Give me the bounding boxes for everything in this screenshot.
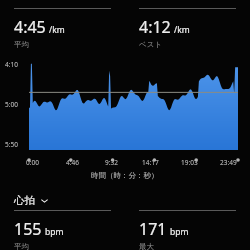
staticText: 5:00 bbox=[5, 100, 18, 109]
staticText: 時間（時：分：秒） bbox=[91, 171, 159, 180]
staticText: 4:46 bbox=[66, 158, 79, 167]
staticText: 171 bbox=[139, 218, 167, 240]
button[interactable]: 心拍 bbox=[0, 194, 250, 207]
staticText: 155 bbox=[14, 218, 42, 240]
staticText: 23:49 bbox=[220, 158, 237, 167]
staticText: 14:17 bbox=[142, 158, 159, 167]
button[interactable]: 171 bbox=[125, 210, 250, 250]
staticText: 最大 bbox=[139, 242, 154, 250]
staticText: 4:45 bbox=[14, 16, 46, 38]
button[interactable]: 155 bbox=[0, 210, 125, 250]
staticText: 5:50 bbox=[5, 140, 18, 149]
button[interactable]: 4:45 bbox=[0, 8, 125, 49]
staticText: 平均 bbox=[14, 242, 29, 250]
staticText: 19:03 bbox=[181, 158, 198, 167]
staticText: 4:10 bbox=[5, 60, 18, 69]
staticText: 9:32 bbox=[105, 158, 118, 167]
staticText: 4:12 bbox=[139, 16, 171, 38]
button[interactable]: 4:12 bbox=[125, 8, 250, 49]
staticText: bpm bbox=[170, 226, 189, 238]
other: Expand heart rate bbox=[40, 196, 49, 205]
staticText: /km bbox=[49, 24, 65, 36]
staticText: 平均 bbox=[14, 40, 29, 49]
staticText: bpm bbox=[45, 226, 64, 238]
staticText: 0:00 bbox=[26, 158, 39, 167]
staticText: /km bbox=[174, 24, 190, 36]
staticText: 心拍 bbox=[14, 194, 35, 207]
staticText: ベスト bbox=[139, 40, 163, 49]
